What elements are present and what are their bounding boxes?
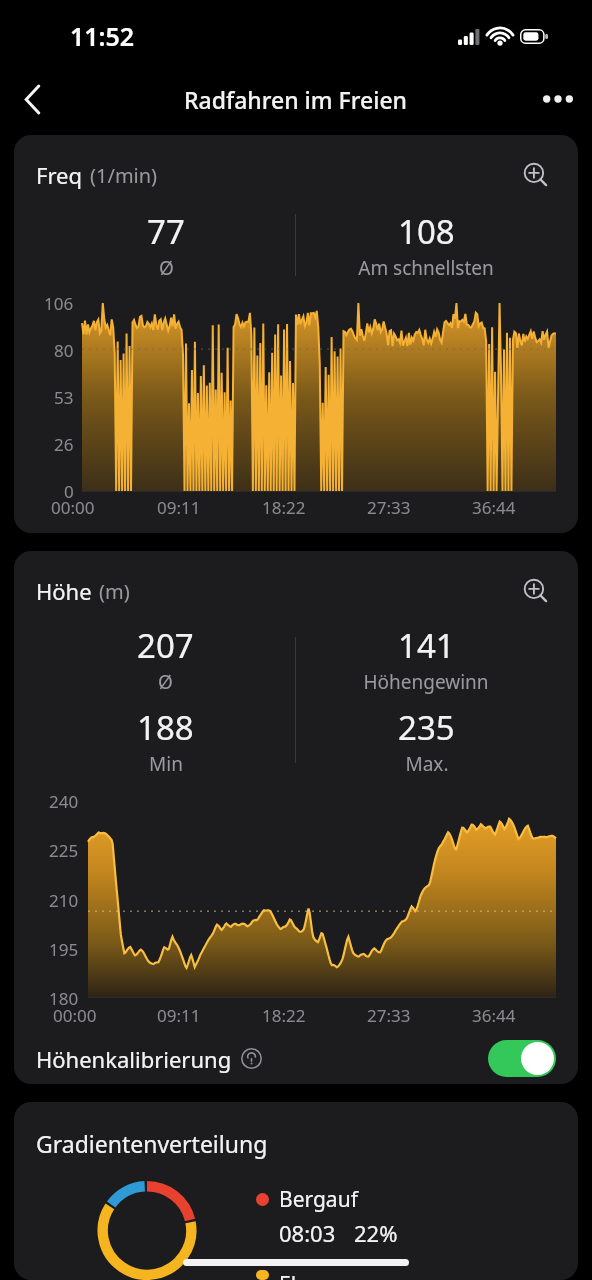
staticText: 26 <box>54 433 74 456</box>
staticText: 09:11 <box>157 496 201 519</box>
staticText: Max. <box>405 751 449 777</box>
staticText: 240 <box>49 790 79 813</box>
staticText: Höhengewinn <box>363 669 489 695</box>
staticText: (1/min) <box>90 162 158 189</box>
staticText: Freq <box>36 160 83 190</box>
staticText: 36:44 <box>472 496 516 519</box>
staticText: 27:33 <box>367 496 411 519</box>
staticText: Radfahren im Freien <box>184 84 408 115</box>
staticText: 108 <box>398 209 455 254</box>
staticText: 235 <box>398 705 455 750</box>
staticText: 18:22 <box>262 1004 306 1027</box>
staticText: 207 <box>137 623 194 668</box>
staticText: 77 <box>147 209 185 254</box>
staticText: 195 <box>49 938 79 961</box>
staticText: 00:00 <box>53 1004 97 1027</box>
button[interactable]: Gradientenverteilung <box>14 1102 578 1280</box>
staticText: Eben <box>279 1270 329 1280</box>
staticText: 53 <box>54 386 74 409</box>
staticText: 225 <box>49 839 79 862</box>
button[interactable]: Zoom cadence chart <box>516 155 556 195</box>
button[interactable]: Back <box>10 77 54 121</box>
button[interactable]: More options <box>536 77 580 121</box>
staticText: 18:22 <box>262 496 306 519</box>
staticText: Gradientenverteilung <box>36 1128 268 1159</box>
staticText: 180 <box>49 987 79 1010</box>
staticText: Ø <box>159 255 174 281</box>
staticText: Am schnellsten <box>358 255 494 281</box>
button[interactable]: Freq <box>14 135 578 533</box>
staticText: Höhe <box>36 576 92 606</box>
staticText: 80 <box>54 339 74 362</box>
staticText: Bergauf <box>279 1185 358 1214</box>
staticText: 09:11 <box>157 1004 201 1027</box>
staticText: Min <box>149 751 183 777</box>
staticText: Höhenkalibrierung <box>36 1044 232 1074</box>
staticText: (m) <box>99 578 130 605</box>
staticText: 00:00 <box>51 496 95 519</box>
staticText: 36:44 <box>472 1004 516 1027</box>
button[interactable]: Zoom elevation chart <box>516 571 556 611</box>
button[interactable]: Höhenkalibrierung <box>36 1033 556 1084</box>
staticText: 08:03 <box>279 1218 336 1248</box>
staticText: 22% <box>354 1218 398 1248</box>
staticText: 210 <box>49 889 79 912</box>
staticText: 106 <box>44 292 74 315</box>
staticText: 27:33 <box>367 1004 411 1027</box>
staticText: 11:52 <box>70 19 135 53</box>
staticText: 141 <box>398 623 455 668</box>
button[interactable]: Höhe <box>14 551 578 1084</box>
staticText: 0 <box>64 480 74 503</box>
button[interactable]: Höhenkalibrierung toggle <box>488 1040 556 1077</box>
staticText: Ø <box>158 669 173 695</box>
staticText: 188 <box>137 705 194 750</box>
